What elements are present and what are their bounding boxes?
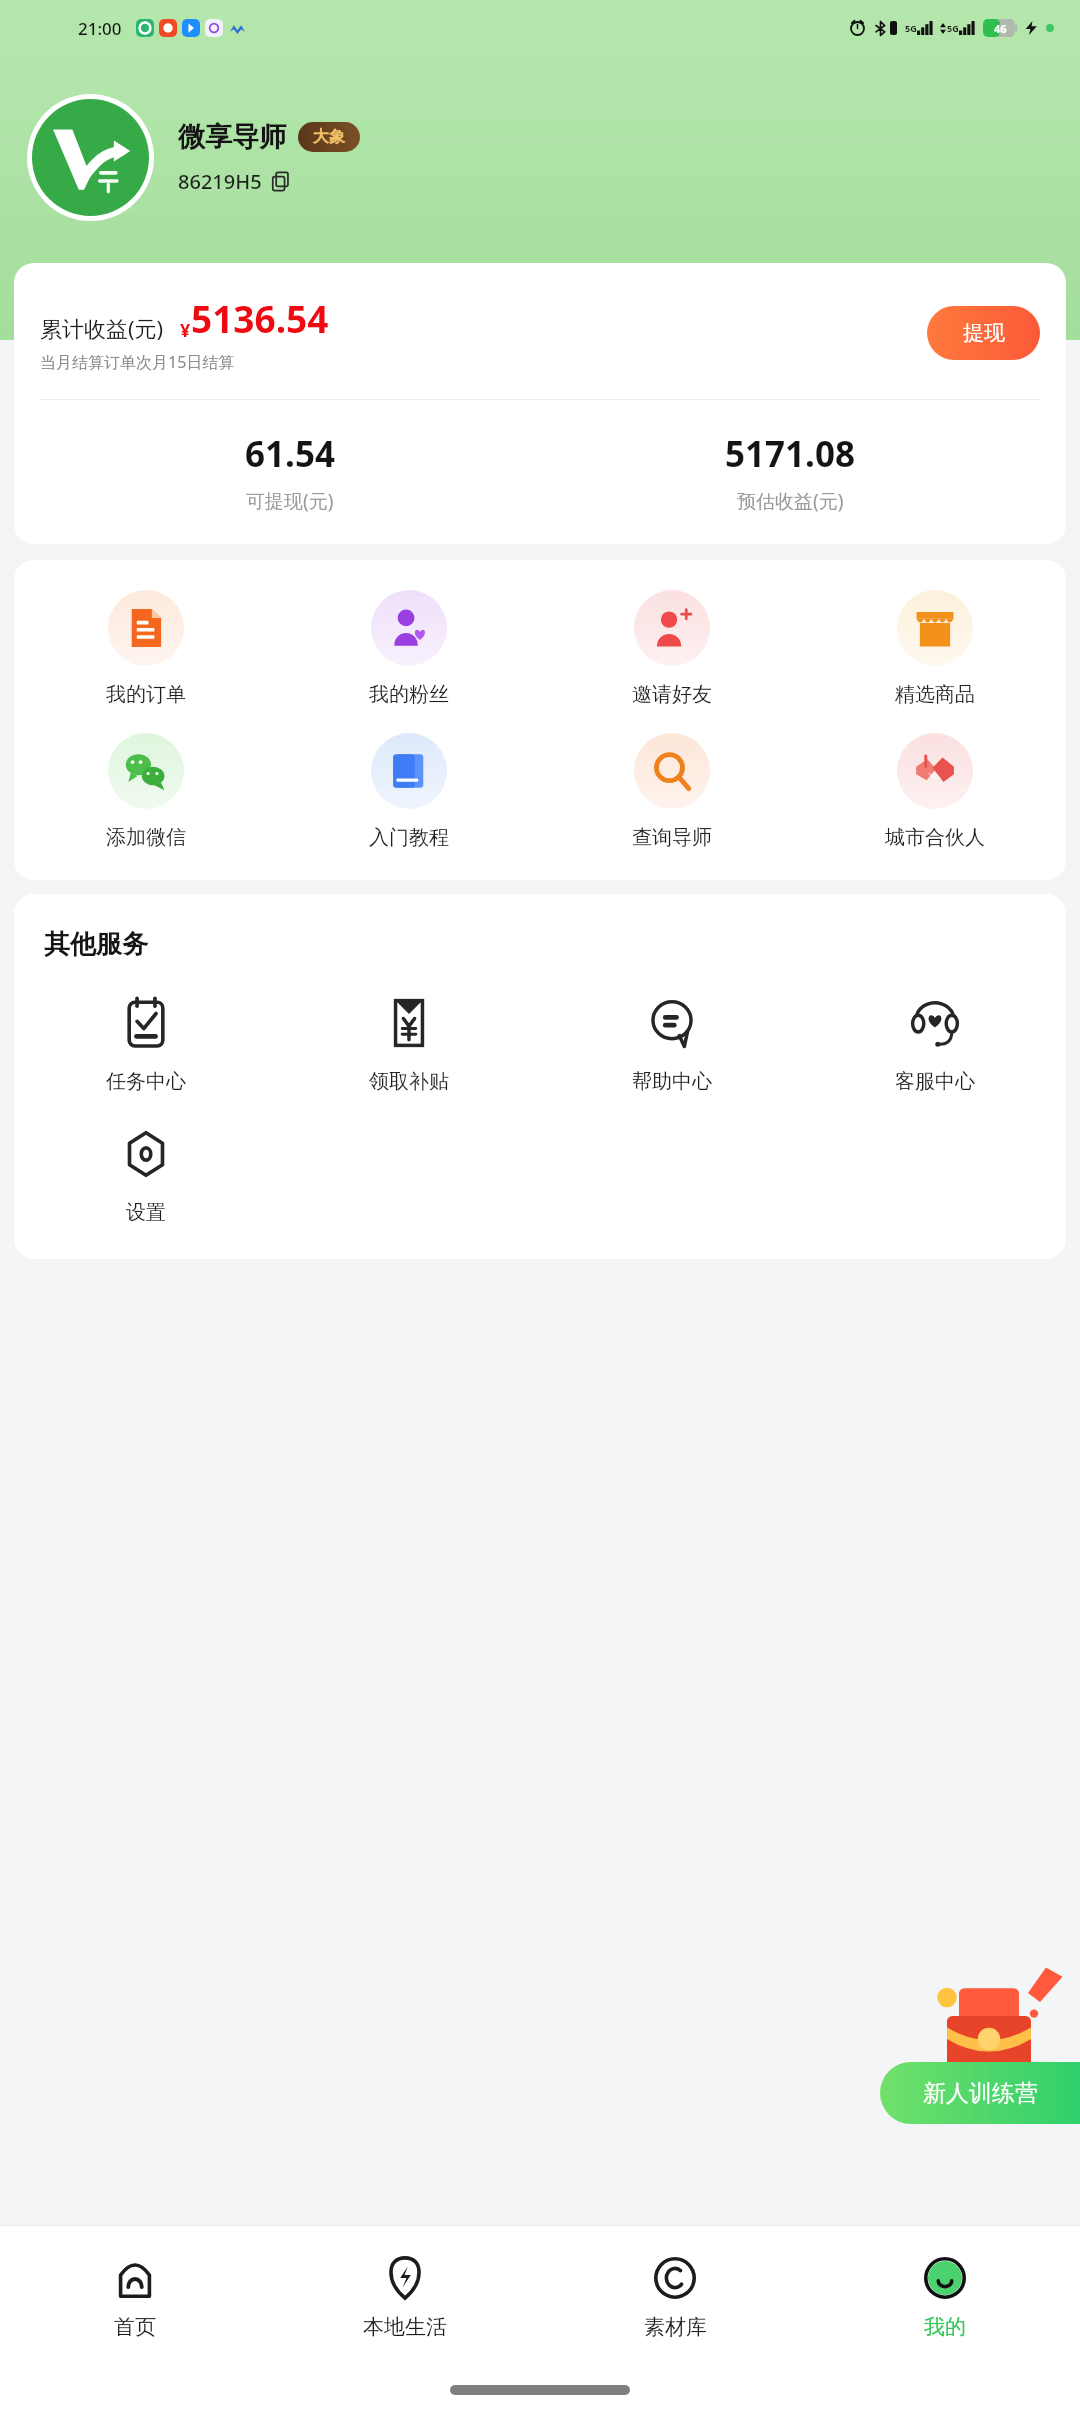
other: Copy ID xyxy=(272,172,291,191)
button[interactable]: 帮助中心 xyxy=(540,995,803,1094)
staticText: 客服中心 xyxy=(895,1069,975,1094)
button[interactable]: 61.54 xyxy=(40,430,540,514)
button[interactable]: 任务中心 xyxy=(14,995,277,1094)
staticText: 预估收益(元) xyxy=(737,488,844,514)
button[interactable]: 我的粉丝 xyxy=(277,590,540,707)
button[interactable]: 城市合伙人 xyxy=(803,733,1066,850)
button[interactable]: 本地生活 xyxy=(270,2226,540,2368)
staticText: 素材库 xyxy=(644,2314,707,2340)
button[interactable]: 精选商品 xyxy=(803,590,1066,707)
staticText: 5136.54 xyxy=(191,293,329,343)
button[interactable]: 我的 xyxy=(810,2226,1080,2368)
staticText: 5G xyxy=(947,22,959,34)
staticText: 其他服务 xyxy=(44,928,148,961)
button[interactable]: 添加微信 xyxy=(14,733,277,850)
staticText: 5171.08 xyxy=(725,430,855,478)
button[interactable]: Profile avatar xyxy=(32,99,149,216)
staticText: 微享导师 xyxy=(178,120,286,154)
staticText: 大象 xyxy=(313,127,345,147)
button[interactable]: 领取补贴 xyxy=(277,995,540,1094)
staticText: 新人训练营 xyxy=(923,2079,1038,2108)
staticText: 我的订单 xyxy=(106,682,186,707)
staticText: 我的 xyxy=(924,2314,966,2340)
staticText: 设置 xyxy=(126,1200,166,1225)
staticText: 当月结算订单次月15日结算 xyxy=(40,351,235,373)
button[interactable]: 大象 xyxy=(298,122,360,152)
button[interactable]: 素材库 xyxy=(540,2226,810,2368)
staticText: 5G xyxy=(905,22,917,34)
button[interactable]: 入门教程 xyxy=(277,733,540,850)
button[interactable]: 设置 xyxy=(14,1126,277,1225)
staticText: 我的粉丝 xyxy=(369,682,449,707)
staticText: 86219H5 xyxy=(178,168,262,195)
staticText: 首页 xyxy=(114,2314,156,2340)
staticText: 查询导师 xyxy=(632,825,712,850)
staticText: 提现 xyxy=(963,320,1005,346)
staticText: 帮助中心 xyxy=(632,1069,712,1094)
staticText: 城市合伙人 xyxy=(885,825,985,850)
button[interactable]: 客服中心 xyxy=(803,995,1066,1094)
staticText: ¥ xyxy=(180,318,191,343)
button[interactable]: 邀请好友 xyxy=(540,590,803,707)
staticText: 精选商品 xyxy=(895,682,975,707)
staticText: 61.54 xyxy=(245,430,335,478)
button[interactable]: 新人训练营 xyxy=(880,2062,1080,2124)
staticText: 21:00 xyxy=(78,17,122,40)
staticText: 46 xyxy=(994,21,1007,36)
button[interactable]: 首页 xyxy=(0,2226,270,2368)
staticText: 累计收益(元) xyxy=(40,313,164,343)
button[interactable]: 5171.08 xyxy=(540,430,1040,514)
button[interactable]: 86219H5 xyxy=(178,168,291,195)
button[interactable]: 查询导师 xyxy=(540,733,803,850)
staticText: 入门教程 xyxy=(369,825,449,850)
staticText: 领取补贴 xyxy=(369,1069,449,1094)
button[interactable]: 我的订单 xyxy=(14,590,277,707)
staticText: 本地生活 xyxy=(363,2314,447,2340)
staticText: 添加微信 xyxy=(106,825,186,850)
staticText: 邀请好友 xyxy=(632,682,712,707)
button[interactable]: 提现 xyxy=(927,306,1040,360)
staticText: 可提现(元) xyxy=(246,488,334,514)
staticText: 任务中心 xyxy=(106,1069,186,1094)
